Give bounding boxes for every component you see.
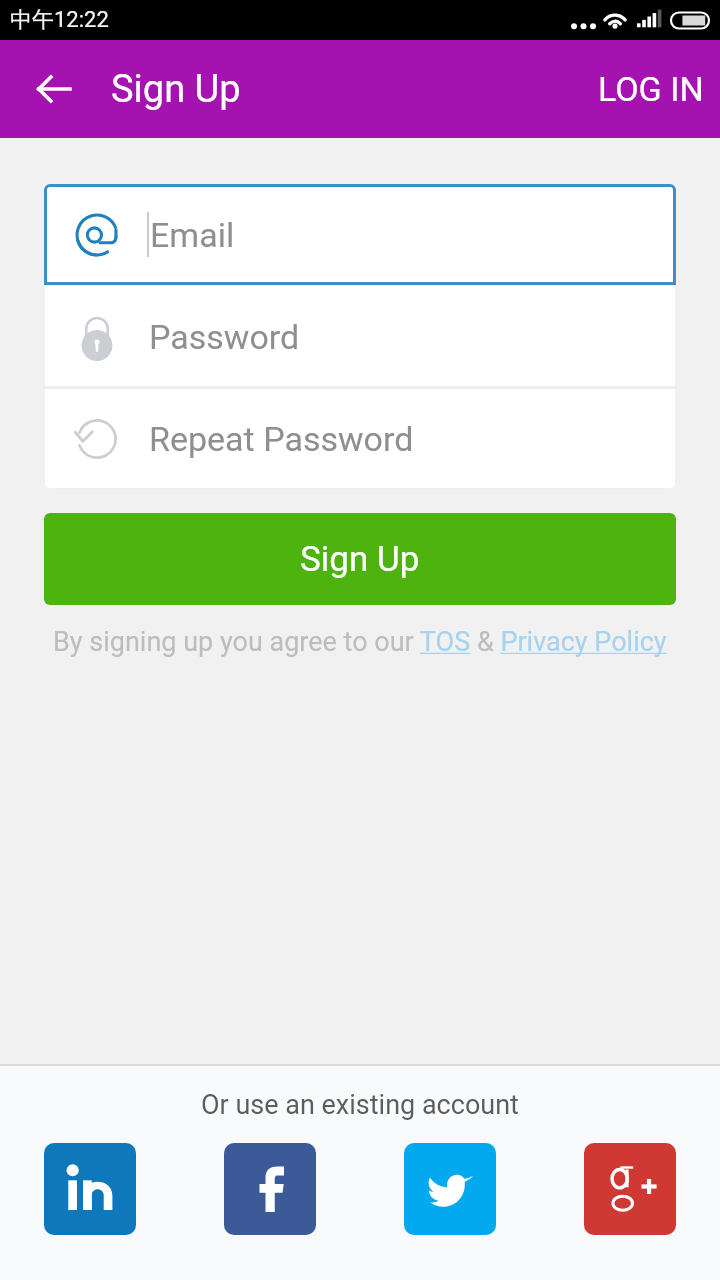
button[interactable]: Repeat Password — [44, 388, 676, 489]
staticText: By signing up you agree to our TOS & Pri… — [53, 626, 667, 658]
button[interactable]: Sign Up — [44, 513, 676, 605]
button[interactable]: Email — [44, 184, 676, 285]
staticText: 中午12:22 — [10, 6, 109, 34]
staticText: Sign Up — [300, 539, 420, 580]
staticText: Repeat Password — [149, 419, 414, 459]
button[interactable]: Sign in with Facebook — [224, 1143, 316, 1235]
button[interactable]: Password — [44, 285, 676, 388]
button[interactable]: Sign in with Google Plus — [584, 1143, 676, 1235]
staticText: LOG IN — [598, 69, 704, 109]
button[interactable]: Sign in with Twitter — [404, 1143, 496, 1235]
button[interactable]: Sign in with LinkedIn — [44, 1143, 136, 1235]
staticText: Password — [149, 317, 300, 357]
staticText: Email — [150, 215, 235, 255]
staticText: Or use an existing account — [201, 1089, 519, 1121]
staticText: Sign Up — [111, 67, 241, 112]
button[interactable]: By signing up you agree to our TOS & Pri… — [53, 626, 667, 658]
button[interactable]: LOG IN — [582, 47, 720, 131]
button[interactable]: Back — [20, 55, 88, 123]
